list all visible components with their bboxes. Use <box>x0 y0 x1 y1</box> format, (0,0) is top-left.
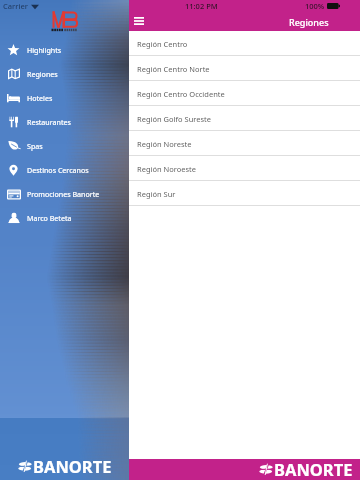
button[interactable]: Promociones Banorte <box>0 182 129 206</box>
button[interactable]: Región Centro Norte <box>129 56 360 81</box>
button[interactable]: Open navigation menu <box>130 12 148 30</box>
staticText: Highlights <box>27 45 62 55</box>
button[interactable]: Hoteles <box>0 86 129 110</box>
button[interactable]: Marco Beteta <box>0 206 129 230</box>
button[interactable]: Región Noroeste <box>129 156 360 181</box>
button[interactable]: Región Golfo Sureste <box>129 106 360 131</box>
button[interactable]: Spas <box>0 134 129 158</box>
button[interactable]: Regiones <box>0 62 129 86</box>
staticText: Spas <box>27 141 43 151</box>
button[interactable]: Región Sur <box>129 181 360 206</box>
staticText: BANORTE <box>274 458 353 479</box>
button[interactable]: Región Centro <box>129 31 360 56</box>
staticText: 100% <box>305 1 325 11</box>
staticText: Restaurantes <box>27 117 71 127</box>
staticText: Marco Beteta <box>27 213 72 223</box>
staticText: Región Golfo Sureste <box>137 114 212 124</box>
staticText: Región Noreste <box>137 139 192 149</box>
button[interactable]: Región Centro Occidente <box>129 81 360 106</box>
staticText: Región Centro Occidente <box>137 89 225 99</box>
staticText: 11:02 PM <box>185 1 218 11</box>
staticText: Carrier <box>3 1 28 11</box>
staticText: Destinos Cercanos <box>27 165 89 175</box>
staticText: Región Sur <box>137 189 176 199</box>
staticText: Región Centro Norte <box>137 64 210 74</box>
button[interactable]: Destinos Cercanos <box>0 158 129 182</box>
button[interactable]: Región Noreste <box>129 131 360 156</box>
staticText: Región Noroeste <box>137 164 197 174</box>
staticText: Región Centro <box>137 39 188 49</box>
staticText: Hoteles <box>27 93 53 103</box>
button[interactable]: Highlights <box>0 38 129 62</box>
staticText: Promociones Banorte <box>27 189 100 199</box>
staticText: BANORTE <box>33 455 112 477</box>
button[interactable]: Restaurantes <box>0 110 129 134</box>
staticText: Regiones <box>27 69 58 79</box>
staticText: Regiones <box>289 16 329 28</box>
